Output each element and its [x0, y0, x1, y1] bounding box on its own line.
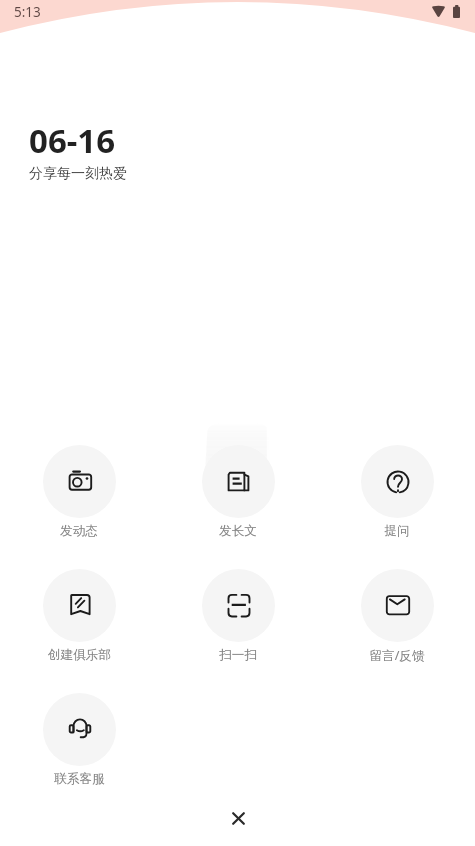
staticText: 分享每一刻热爱: [29, 165, 127, 183]
staticText: 5:13: [14, 3, 41, 21]
staticText: 06-16: [29, 118, 116, 163]
staticText: 发动态: [60, 523, 98, 539]
button[interactable]: 留言/反馈: [353, 569, 441, 664]
button[interactable]: 创建俱乐部: [35, 569, 123, 663]
staticText: 留言/反馈: [369, 647, 425, 664]
staticText: 创建俱乐部: [48, 647, 111, 663]
staticText: 提问: [384, 523, 410, 539]
staticText: 联系客服: [54, 771, 105, 787]
button[interactable]: 发动态: [35, 445, 123, 539]
button[interactable]: 联系客服: [35, 693, 123, 787]
button[interactable]: 发长文: [194, 445, 282, 539]
button[interactable]: Close: [216, 796, 260, 840]
staticText: 扫一扫: [219, 647, 257, 663]
button[interactable]: 提问: [353, 445, 441, 539]
button[interactable]: 扫一扫: [194, 569, 282, 663]
staticText: 发长文: [219, 523, 257, 539]
